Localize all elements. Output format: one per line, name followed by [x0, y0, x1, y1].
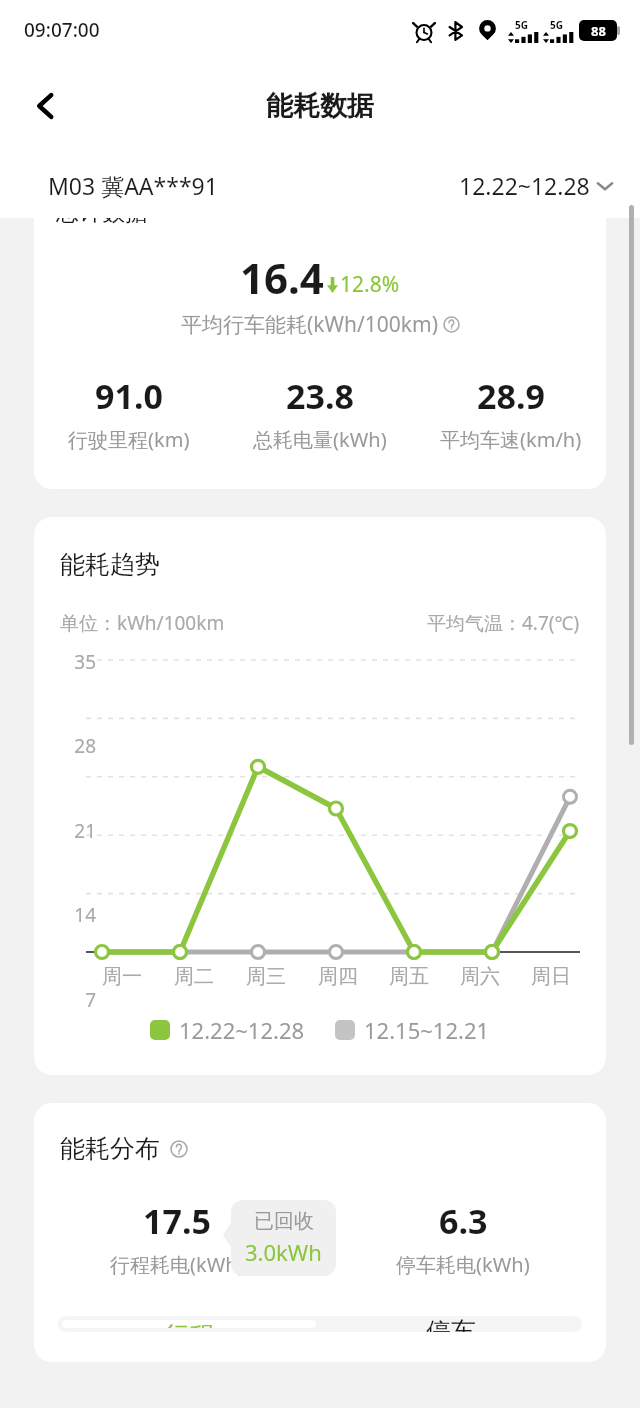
staticText: 平均气温：4.7(℃) [427, 610, 580, 636]
staticText: 总计数据 [56, 218, 148, 227]
button[interactable]: 12.15~12.21 [335, 1015, 490, 1045]
staticText: 28.9 [477, 373, 545, 419]
staticText: M03 冀AA***91 [48, 170, 218, 201]
staticText: 21 [34, 818, 96, 844]
staticText: 行驶里程(km) [68, 426, 190, 453]
staticText: 12.8% [340, 270, 400, 299]
staticText: 14 [34, 902, 96, 928]
staticText: 停车耗电(kWh) [396, 1251, 530, 1278]
staticText: 周六 [460, 964, 500, 989]
staticText: 行程 [164, 1320, 214, 1328]
staticText: 17.5 [143, 1198, 211, 1244]
staticText: 周三 [246, 964, 286, 989]
staticText: 28 [34, 733, 96, 759]
staticText: 周日 [531, 964, 571, 989]
button[interactable]: 17.5 [34, 1198, 320, 1278]
staticText: 6.3 [439, 1198, 488, 1244]
staticText: 5G [515, 18, 528, 32]
staticText: 91.0 [95, 373, 163, 419]
staticText: 周二 [174, 964, 214, 989]
staticText: 停车 [426, 1316, 476, 1332]
staticText: 周五 [389, 964, 429, 989]
staticText: 平均行车能耗(kWh/100km) [181, 310, 439, 339]
button[interactable]: 23.8 [224, 373, 415, 453]
staticText: 能耗分布 [60, 1133, 160, 1164]
staticText: 能耗趋势 [60, 549, 160, 580]
staticText: 3.0kWh [245, 1237, 322, 1267]
staticText: 5G [550, 18, 563, 32]
staticText: 12.22~12.28 [179, 1015, 305, 1045]
button[interactable]: 91.0 [34, 373, 224, 453]
staticText: 能耗数据 [266, 89, 374, 123]
button[interactable]: 6.3 [320, 1198, 606, 1278]
staticText: 周一 [102, 964, 142, 989]
button[interactable]: 12.22~12.28 [150, 1015, 305, 1045]
button[interactable]: Back [18, 78, 74, 134]
button[interactable]: 停车 [320, 1316, 582, 1332]
staticText: 12.22~12.28 [459, 170, 590, 201]
staticText: 0 [34, 1071, 96, 1075]
staticText: 行程耗电(kWh) [110, 1251, 244, 1278]
staticText: 单位：kWh/100km [60, 610, 225, 636]
staticText: 35 [34, 649, 96, 675]
staticText: 总耗电量(kWh) [253, 426, 387, 453]
staticText: 88 [591, 22, 606, 40]
staticText: 09:07:00 [24, 17, 100, 43]
button[interactable]: 12.22~12.28 [459, 170, 614, 201]
staticText: 已回收 [254, 1209, 314, 1234]
staticText: 12.15~12.21 [364, 1015, 490, 1045]
staticText: 23.8 [286, 373, 354, 419]
button[interactable]: 行程 [62, 1320, 316, 1328]
staticText: 周四 [318, 964, 358, 989]
staticText: 7 [34, 987, 96, 1013]
button[interactable]: 28.9 [415, 373, 606, 453]
staticText: 16.4 [240, 249, 324, 306]
staticText: 平均车速(km/h) [440, 426, 582, 453]
